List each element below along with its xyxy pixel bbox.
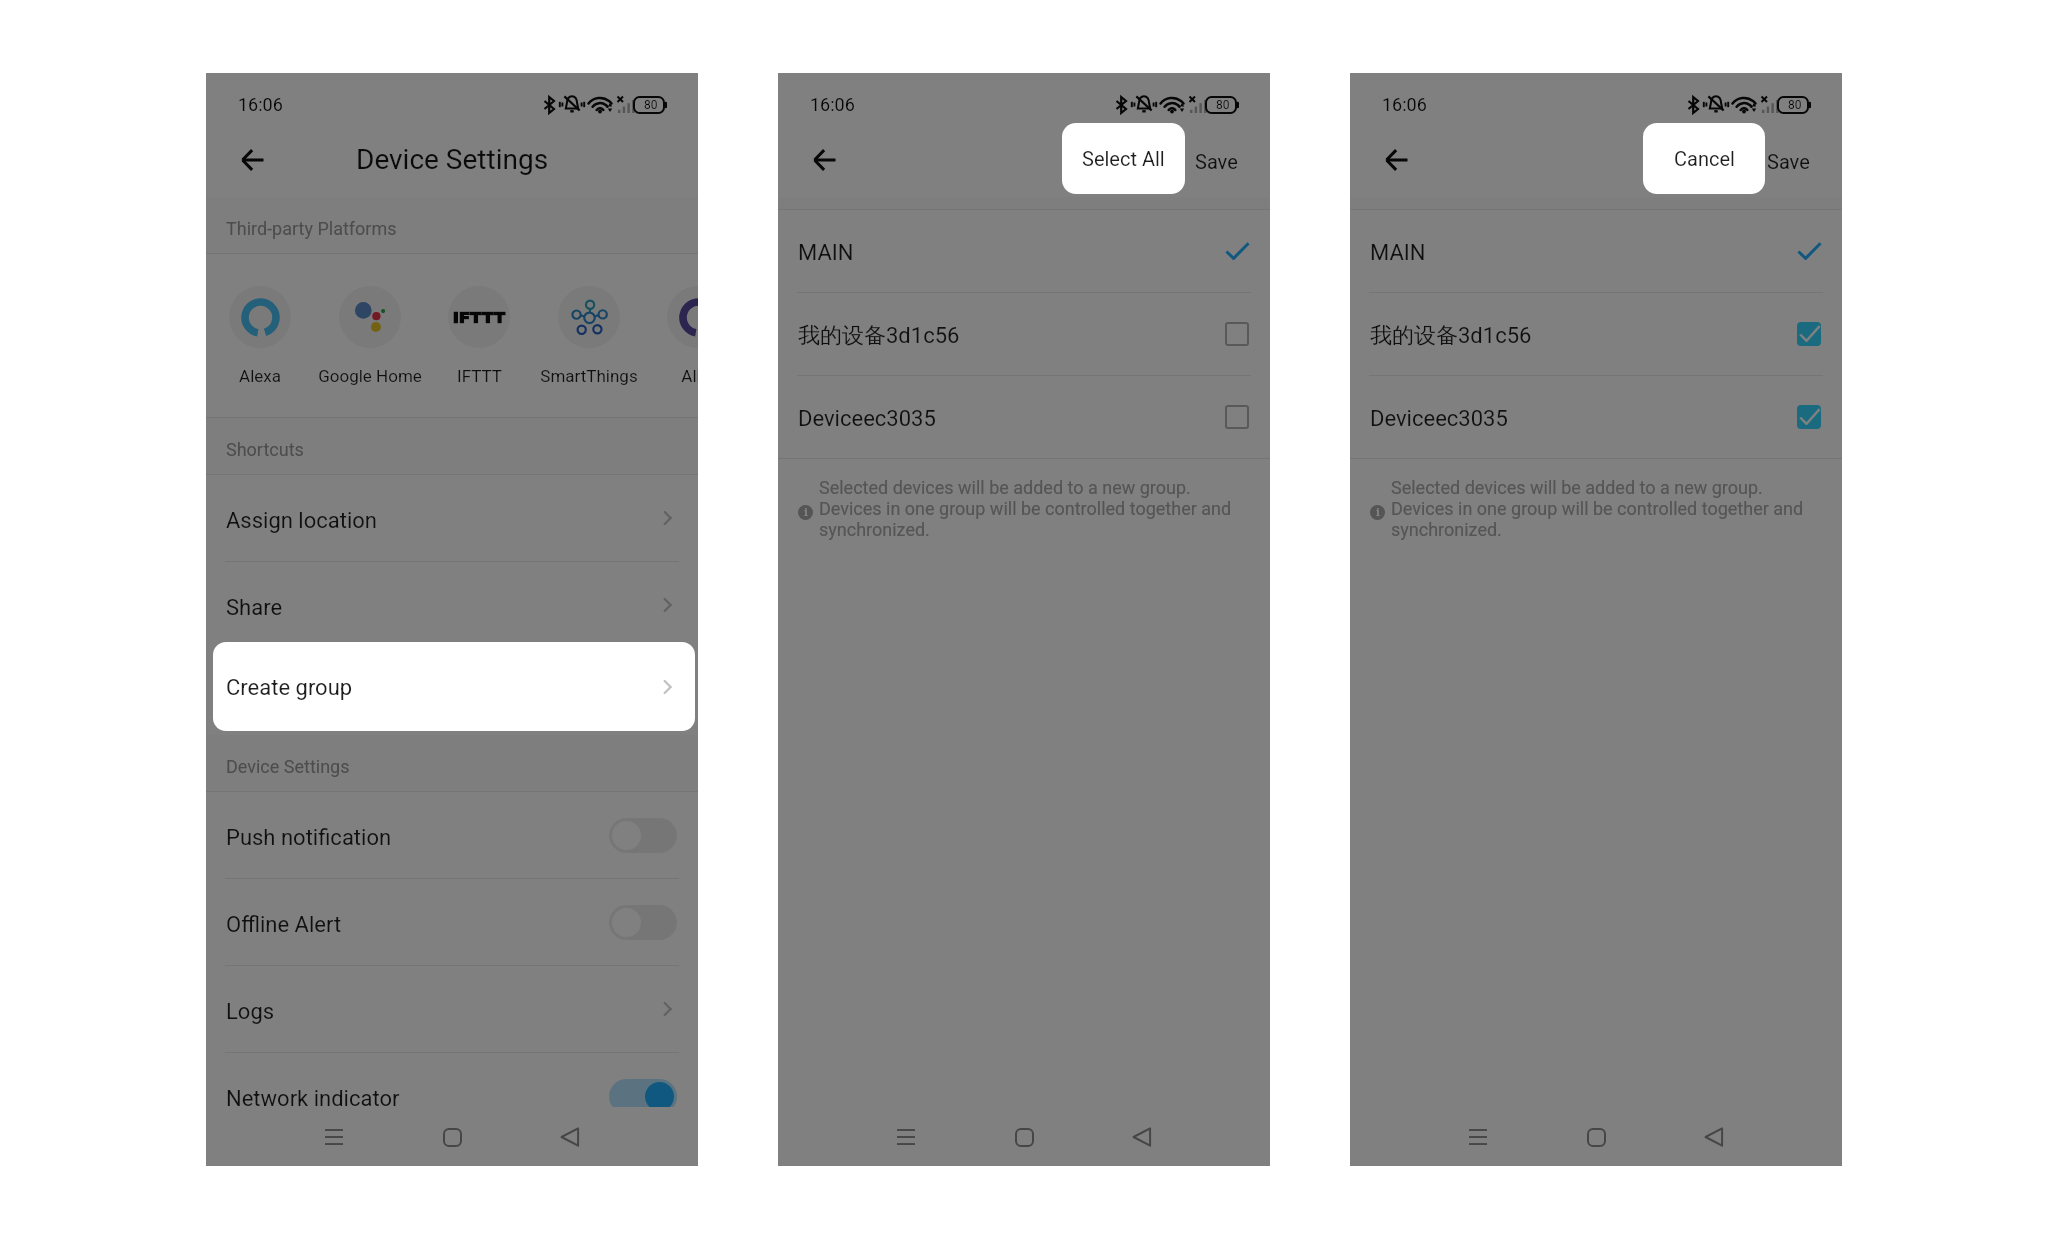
- button[interactable]: Push notification: [206, 792, 698, 878]
- button[interactable]: Select All: [1070, 138, 1185, 185]
- staticText: Selected devices will be added to a new …: [819, 477, 1191, 498]
- button[interactable]: [609, 1079, 677, 1114]
- button[interactable]: Back: [797, 132, 853, 188]
- staticText: Select All: [1086, 150, 1169, 173]
- staticText: 16:06: [1382, 94, 1427, 115]
- button[interactable]: Back: [225, 132, 281, 188]
- button[interactable]: [609, 905, 677, 940]
- staticText: 我的设备3d1c56: [1370, 322, 1532, 350]
- button[interactable]: [425, 254, 534, 417]
- staticText: MAIN: [798, 240, 854, 266]
- button[interactable]: Home: [429, 1114, 475, 1160]
- staticText: Device Settings: [226, 756, 350, 777]
- staticText: Device Settings: [356, 143, 549, 176]
- button[interactable]: Share: [206, 562, 698, 648]
- button[interactable]: Cancel: [1664, 138, 1757, 185]
- button[interactable]: Back: [547, 1114, 593, 1160]
- staticText: 我的设备3d1c56: [798, 322, 960, 350]
- staticText: synchronized.: [1391, 519, 1502, 540]
- button[interactable]: 我的设备3d1c56: [778, 293, 1270, 375]
- button[interactable]: Back: [1691, 1114, 1737, 1160]
- staticText: i: [1376, 504, 1380, 519]
- staticText: Deviceec3035: [1370, 406, 1508, 432]
- staticText: Shortcuts: [226, 439, 304, 460]
- staticText: Push notification: [226, 825, 392, 851]
- staticText: Alexa: [239, 366, 281, 386]
- staticText: Google Home: [318, 366, 422, 386]
- button[interactable]: [206, 254, 315, 417]
- button[interactable]: Deviceec3035: [1350, 376, 1842, 458]
- button[interactable]: Home: [1001, 1114, 1047, 1160]
- staticText: Ali: [681, 366, 698, 386]
- button[interactable]: MAIN: [778, 210, 1270, 292]
- staticText: Cancel: [1680, 150, 1741, 173]
- staticText: IFTTT: [449, 308, 509, 326]
- button[interactable]: Network indicator: [206, 1053, 698, 1139]
- staticText: Devices in one group will be controlled …: [1391, 498, 1804, 519]
- staticText: SmartThings: [540, 366, 638, 386]
- staticText: Assign location: [226, 508, 377, 534]
- staticText: Create group: [226, 682, 353, 708]
- button[interactable]: [644, 254, 698, 417]
- button[interactable]: Deviceec3035: [778, 376, 1270, 458]
- button[interactable]: Offline Alert: [206, 879, 698, 965]
- staticText: Deviceec3035: [798, 406, 936, 432]
- staticText: Devices in one group will be controlled …: [819, 498, 1232, 519]
- staticText: 80: [1788, 98, 1802, 112]
- staticText: 80: [1216, 98, 1230, 112]
- staticText: Logs: [226, 999, 275, 1025]
- staticText: synchronized.: [819, 519, 930, 540]
- staticText: i: [804, 504, 808, 519]
- staticText: Third-party Platforms: [226, 218, 397, 239]
- staticText: Selected devices will be added to a new …: [1391, 477, 1763, 498]
- button[interactable]: Cancel: [1643, 123, 1765, 194]
- staticText: 80: [644, 98, 658, 112]
- button[interactable]: Select All: [1062, 123, 1185, 194]
- button[interactable]: MAIN: [1350, 210, 1842, 292]
- button[interactable]: Create group: [206, 649, 698, 735]
- button[interactable]: Logs: [206, 966, 698, 1052]
- staticText: IFTTT: [457, 366, 502, 386]
- staticText: Save: [1195, 150, 1238, 173]
- button[interactable]: Recent apps: [1455, 1114, 1501, 1160]
- button[interactable]: Assign location: [206, 475, 698, 561]
- button[interactable]: [316, 254, 425, 417]
- button[interactable]: Back: [1369, 132, 1425, 188]
- staticText: Save: [1767, 150, 1810, 173]
- button[interactable]: Home: [1573, 1114, 1619, 1160]
- button[interactable]: Recent apps: [311, 1114, 357, 1160]
- button[interactable]: Create group: [213, 642, 695, 731]
- staticText: Select All: [1082, 147, 1165, 170]
- button[interactable]: Recent apps: [883, 1114, 929, 1160]
- button[interactable]: 我的设备3d1c56: [1350, 293, 1842, 375]
- button[interactable]: [609, 818, 677, 853]
- staticText: 16:06: [238, 94, 283, 115]
- button[interactable]: [535, 254, 644, 417]
- button[interactable]: Back: [1119, 1114, 1165, 1160]
- staticText: 16:06: [810, 94, 855, 115]
- button[interactable]: Save: [1761, 138, 1816, 185]
- staticText: Network indicator: [226, 1086, 400, 1112]
- staticText: Share: [226, 595, 283, 621]
- staticText: Cancel: [1674, 147, 1735, 170]
- staticText: Offline Alert: [226, 912, 342, 938]
- button[interactable]: Save: [1189, 138, 1244, 185]
- staticText: Create group: [226, 675, 353, 701]
- staticText: MAIN: [1370, 240, 1426, 266]
